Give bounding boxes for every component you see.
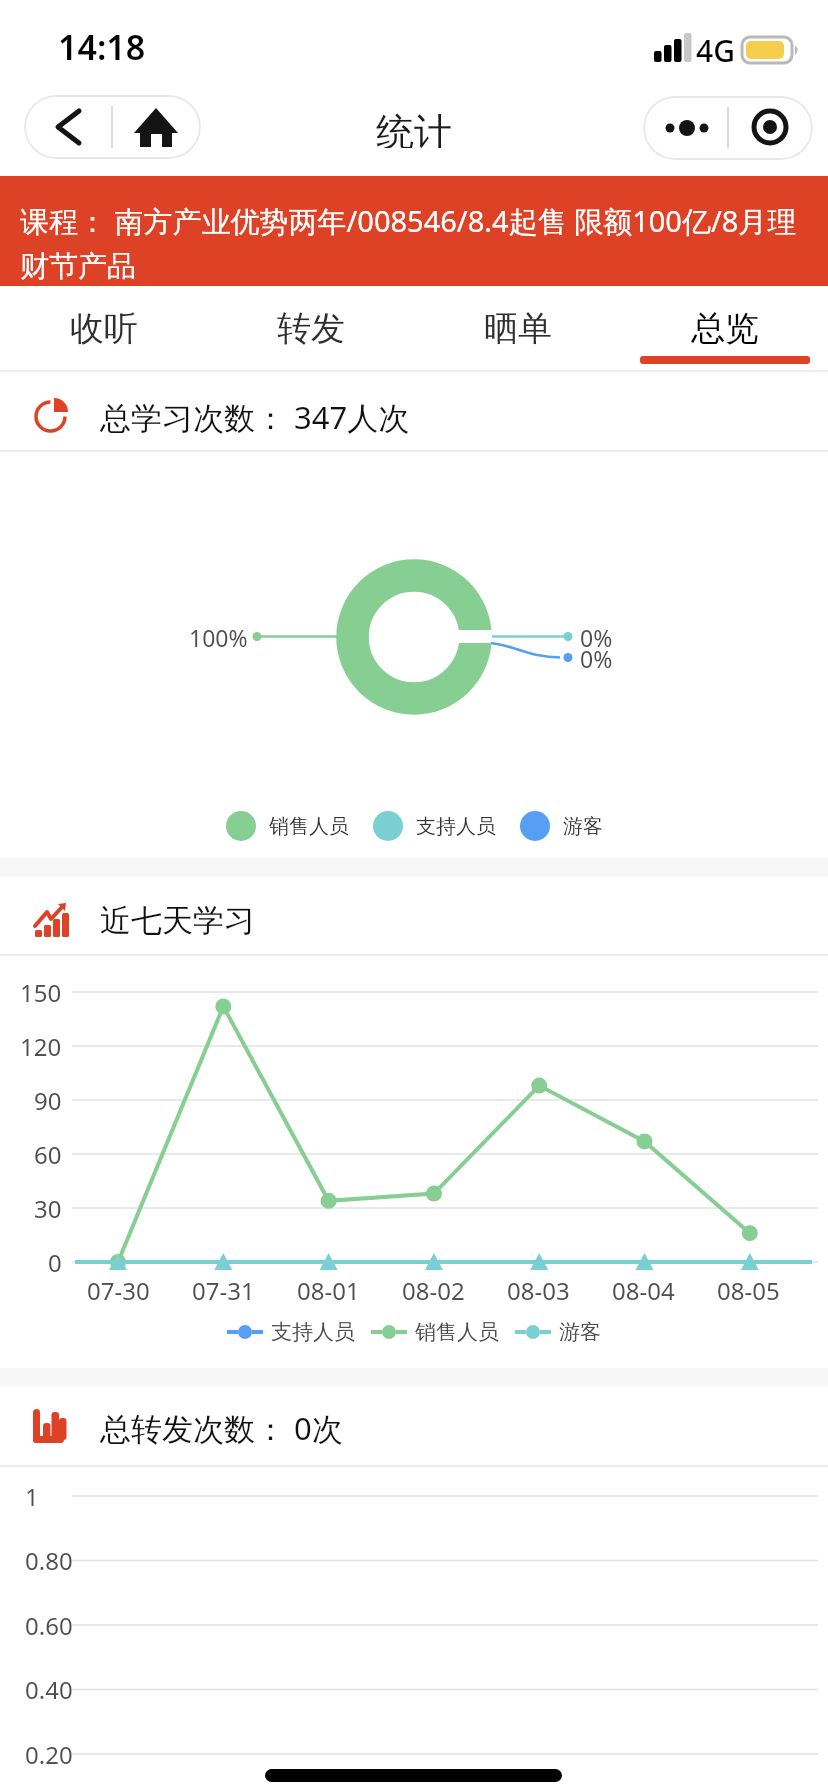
staticText: 0 (48, 1246, 62, 1279)
staticText: 150 (20, 976, 62, 1009)
staticText: 90 (34, 1084, 62, 1117)
staticText: 08-05 (717, 1274, 780, 1307)
staticText: 4G (696, 30, 735, 66)
staticText: 08-01 (297, 1274, 360, 1307)
staticText: 销售人员 (269, 814, 349, 839)
staticText: 0.40 (25, 1673, 73, 1706)
staticText: 支持人员 (271, 1319, 355, 1345)
staticText: 07-30 (87, 1274, 150, 1307)
staticText: 0% (580, 622, 613, 653)
staticText: 120 (20, 1030, 62, 1063)
staticText: 支持人员 (416, 814, 496, 839)
button[interactable]: 收听 (0, 286, 207, 370)
button[interactable] (24, 95, 201, 159)
staticText: 晒单 (484, 307, 552, 350)
staticText: 财节产品 (20, 248, 136, 285)
staticText: 总学习次数： 347人次 (100, 396, 410, 436)
staticText: 近七天学习 (100, 901, 255, 940)
staticText: 60 (34, 1138, 62, 1171)
button[interactable]: 转发 (207, 286, 414, 370)
staticText: 游客 (563, 814, 603, 839)
staticText: 30 (34, 1192, 62, 1225)
staticText: 100% (189, 622, 248, 653)
staticText: 总转发次数： 0次 (100, 1407, 343, 1447)
staticText: 游客 (559, 1319, 601, 1345)
staticText: 0% (580, 643, 613, 674)
staticText: 课程： 南方产业优势两年/008546/8.4起售 限额100亿/8月理 (20, 201, 797, 241)
staticText: 08-04 (612, 1274, 675, 1307)
staticText: 1 (25, 1480, 39, 1513)
staticText: 07-31 (192, 1274, 255, 1307)
staticText: 统计 (376, 108, 452, 148)
staticText: 转发 (277, 307, 345, 350)
staticText: 收听 (70, 307, 138, 350)
button[interactable]: 总览 (621, 286, 828, 370)
staticText: 14:18 (58, 24, 146, 70)
staticText: 销售人员 (415, 1319, 499, 1345)
staticText: 0.60 (25, 1609, 73, 1642)
button[interactable]: 晒单 (414, 286, 621, 370)
button[interactable] (643, 96, 813, 160)
staticText: 0.80 (25, 1544, 73, 1577)
staticText: 08-03 (507, 1274, 570, 1307)
staticText: 08-02 (402, 1274, 465, 1307)
staticText: 0.20 (25, 1738, 73, 1771)
staticText: 总览 (691, 307, 759, 350)
